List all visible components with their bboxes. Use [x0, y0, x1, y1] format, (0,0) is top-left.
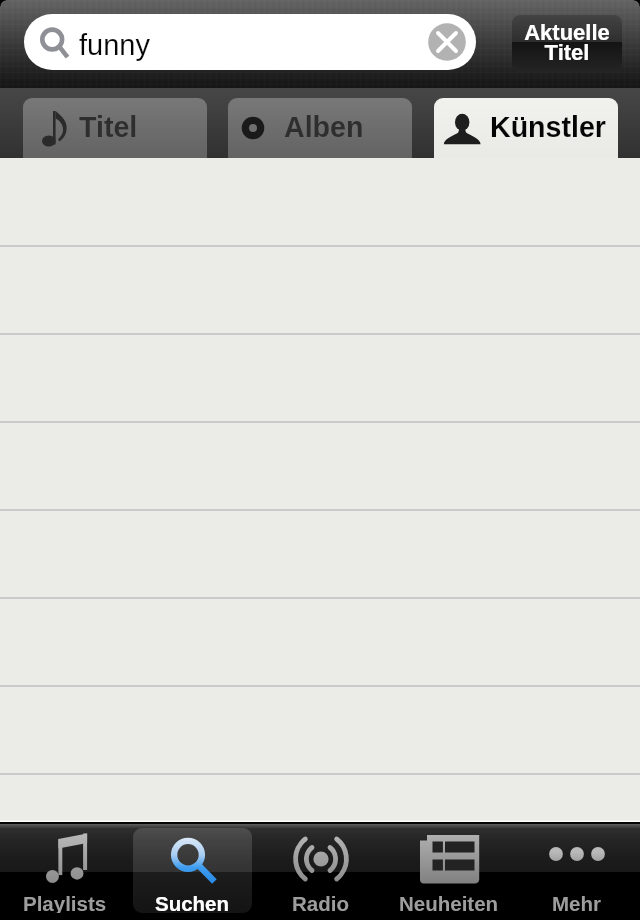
staticText: Alben: [284, 111, 364, 143]
staticText: Neuheiten: [399, 892, 499, 913]
button[interactable]: funny: [24, 14, 476, 70]
button[interactable]: Künstler: [434, 98, 618, 158]
staticText: Künstler: [490, 111, 606, 143]
staticText: Mehr: [552, 892, 601, 913]
staticText: Suchen: [155, 892, 230, 913]
button[interactable]: Radio: [261, 828, 380, 913]
button[interactable]: Titel: [23, 98, 207, 158]
staticText: Aktuelle Titel: [524, 20, 610, 64]
staticText: funny: [79, 29, 150, 61]
staticText: Radio: [292, 892, 349, 913]
button[interactable]: Neuheiten: [389, 828, 508, 913]
button[interactable]: Aktuelle Titel: [512, 15, 622, 72]
button[interactable]: Alben: [228, 98, 412, 158]
button[interactable]: Playlists: [5, 828, 124, 913]
button[interactable]: Clear search: [425, 20, 469, 64]
staticText: Titel: [79, 111, 138, 143]
staticText: Playlists: [23, 892, 107, 913]
button[interactable]: Mehr: [517, 828, 636, 913]
button[interactable]: Suchen: [133, 828, 252, 913]
